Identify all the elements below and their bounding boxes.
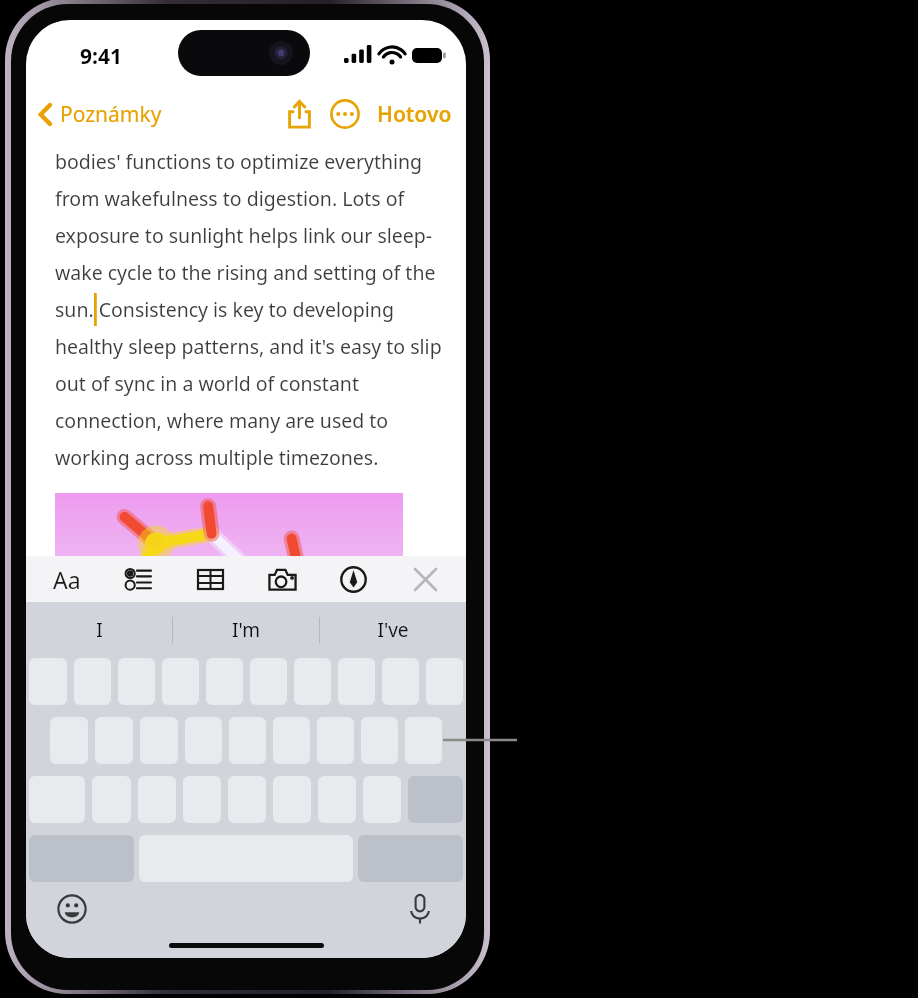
staticText: out of sync in a world of constant: [55, 370, 359, 397]
button[interactable]: Table: [189, 558, 231, 600]
staticText: wake cycle to the rising and setting of …: [55, 259, 436, 286]
staticText: Hotovo: [377, 100, 452, 129]
staticText: I: [96, 617, 103, 643]
staticText: connection, where many are used to: [55, 407, 389, 434]
button[interactable]: Checklist: [118, 558, 160, 600]
staticText: healthy sleep patterns, and it's easy to…: [55, 333, 442, 360]
button[interactable]: Markup: [332, 558, 374, 600]
button[interactable]: I'm: [173, 602, 319, 658]
staticText: I've: [377, 617, 409, 643]
button[interactable]: Close keyboard: [404, 558, 446, 600]
staticText: sun. Consistency is key to developing: [55, 296, 394, 323]
button[interactable]: I've: [320, 602, 466, 658]
staticText: I'm: [232, 617, 260, 643]
staticText: from wakefulness to digestion. Lots of: [55, 185, 405, 212]
button[interactable]: I: [26, 602, 172, 658]
button[interactable]: Emoji: [50, 887, 94, 931]
button[interactable]: More options: [323, 92, 367, 136]
staticText: Poznámky: [60, 100, 162, 129]
button[interactable]: Camera: [261, 558, 303, 600]
button[interactable]: Dictation: [398, 887, 442, 931]
button[interactable]: Hotovo: [371, 94, 458, 135]
button[interactable]: Text format: [46, 558, 88, 600]
button[interactable]: Share: [277, 92, 321, 136]
staticText: working across multiple timezones.: [55, 444, 379, 471]
staticText: 9:41: [80, 42, 122, 71]
staticText: bodies' functions to optimize everything: [55, 148, 423, 175]
button[interactable]: Poznámky: [34, 94, 166, 135]
staticText: Aa: [53, 564, 81, 595]
staticText: exposure to sunlight helps link our slee…: [55, 222, 433, 249]
